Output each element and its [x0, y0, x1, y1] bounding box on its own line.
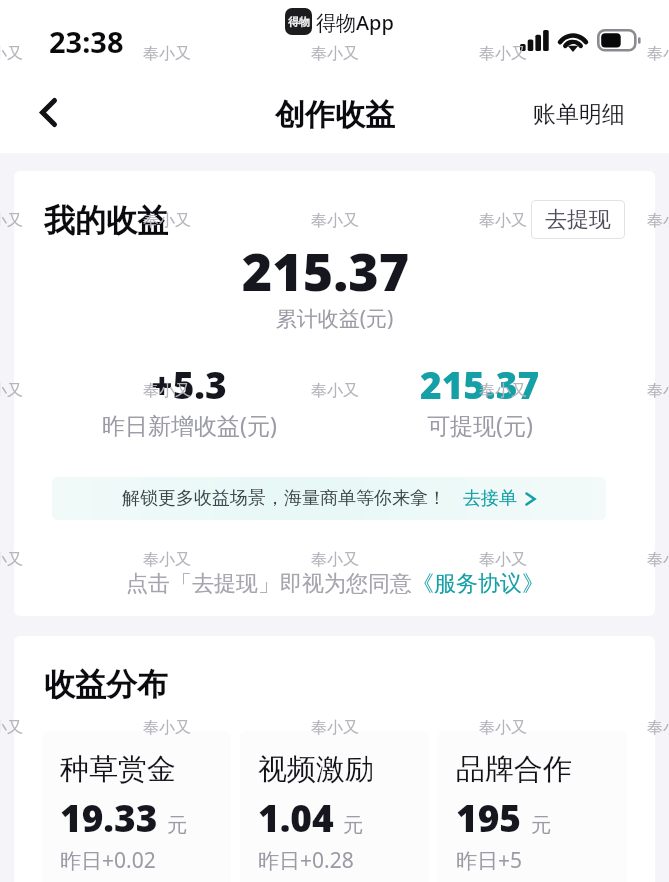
staticText: 奉小又	[479, 718, 527, 738]
staticText: 奉小又	[479, 550, 527, 570]
staticText: 账单明细	[533, 100, 625, 129]
staticText: 《服务协议》	[412, 570, 544, 598]
staticText: 奉小又	[647, 44, 669, 64]
staticText: 奉小又	[311, 381, 359, 401]
staticText: 奉小又	[0, 211, 23, 231]
staticText: 奉小又	[311, 211, 359, 231]
button[interactable]: 《服务协议》	[412, 570, 544, 598]
staticText: 奉小又	[143, 550, 191, 570]
staticText: 昨日+0.02	[60, 846, 156, 875]
staticText: 昨日新增收益(元)	[102, 409, 277, 440]
staticText: 奉小又	[647, 381, 669, 401]
staticText: 奉小又	[647, 550, 669, 570]
staticText: 奉小又	[647, 211, 669, 231]
staticText: 收益分布	[44, 665, 168, 704]
staticText: 奉小又	[0, 381, 23, 401]
staticText: 奉小又	[647, 718, 669, 738]
staticText: 奉小又	[143, 718, 191, 738]
staticText: 视频激励	[258, 751, 374, 788]
staticText: 19.33	[60, 792, 158, 842]
staticText: 种草赏金	[60, 751, 176, 788]
staticText: 元	[343, 813, 363, 838]
staticText: 得物	[288, 15, 310, 29]
staticText: 215.37	[14, 235, 646, 306]
button[interactable]: 视频激励	[240, 731, 429, 882]
staticText: 奉小又	[311, 550, 359, 570]
staticText: 元	[531, 813, 551, 838]
staticText: 得物App	[316, 9, 394, 36]
staticText: 创作收益	[275, 96, 395, 134]
button[interactable]: 解锁更多收益场景，海量商单等你来拿！	[52, 477, 606, 520]
staticText: 23:38	[49, 22, 124, 61]
staticText: 奉小又	[0, 44, 23, 64]
button[interactable]: 种草赏金	[42, 731, 231, 882]
staticText: 195	[456, 792, 522, 842]
button[interactable]: 账单明细	[519, 94, 669, 135]
button[interactable]: 品牌合作	[438, 731, 627, 882]
staticText: 奉小又	[311, 44, 359, 64]
staticText: 元	[167, 813, 187, 838]
staticText: 奉小又	[143, 211, 191, 231]
staticText: 累计收益(元)	[14, 304, 655, 333]
staticText: 奉小又	[0, 718, 23, 738]
staticText: 奉小又	[143, 381, 191, 401]
staticText: 去提现	[545, 206, 611, 234]
staticText: 昨日+5	[456, 846, 523, 875]
staticText: 1.04	[258, 792, 334, 842]
staticText: 昨日+0.28	[258, 846, 354, 875]
staticText: 奉小又	[479, 211, 527, 231]
staticText: 去接单	[463, 487, 517, 510]
staticText: 我的收益	[44, 201, 168, 240]
button[interactable]: Back	[22, 90, 74, 142]
staticText: +5.3	[151, 359, 227, 409]
staticText: 215.37	[420, 359, 540, 409]
staticText: 奉小又	[0, 550, 23, 570]
staticText: 奉小又	[479, 44, 527, 64]
staticText: 可提现(元)	[427, 409, 533, 440]
staticText: 点击「去提现」即视为您同意	[126, 570, 412, 598]
staticText: 品牌合作	[456, 751, 572, 788]
staticText: 奉小又	[479, 381, 527, 401]
staticText: 解锁更多收益场景，海量商单等你来拿！	[122, 487, 446, 510]
staticText: 奉小又	[311, 718, 359, 738]
staticText: 奉小又	[143, 44, 191, 64]
button[interactable]: 去提现	[531, 200, 625, 239]
